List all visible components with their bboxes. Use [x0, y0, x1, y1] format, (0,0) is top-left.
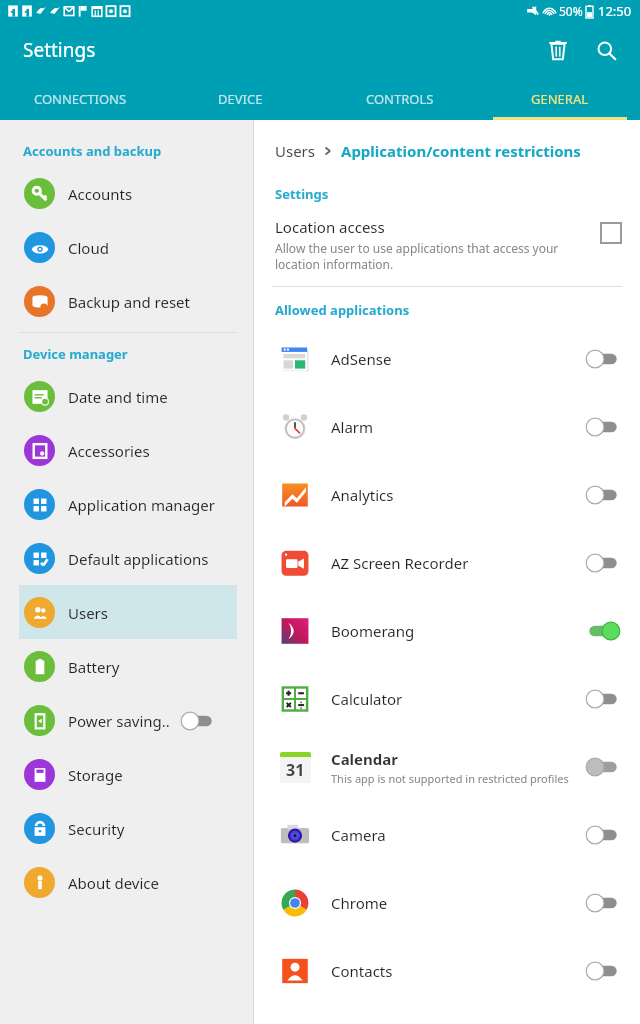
staticText: Security	[68, 819, 125, 839]
staticText: 12:50	[598, 2, 632, 20]
button[interactable]: AdSense	[278, 325, 621, 393]
button[interactable]: Security	[19, 801, 237, 855]
staticText: Calculator	[331, 689, 403, 709]
button[interactable]: Toggle off	[585, 823, 621, 847]
button[interactable]: Application manager	[19, 477, 237, 531]
staticText: CONTROLS	[366, 90, 434, 108]
staticText: This app is not supported in restricted …	[331, 771, 569, 786]
staticText: Default applications	[68, 549, 209, 569]
staticText: Contacts	[331, 961, 393, 981]
staticText: About device	[68, 873, 160, 893]
button[interactable]: Users	[275, 141, 315, 161]
staticText: Settings	[275, 185, 329, 203]
button[interactable]: Toggle off	[585, 347, 621, 371]
button[interactable]: Location access	[275, 217, 621, 272]
staticText: Accounts and backup	[23, 142, 162, 160]
staticText: Alarm	[331, 417, 374, 437]
staticText: Accessories	[68, 441, 150, 461]
button[interactable]: Contacts	[278, 937, 621, 1005]
staticText: DEVICE	[218, 90, 263, 108]
button[interactable]: Power saving..	[19, 693, 237, 747]
staticText: Power saving..	[68, 711, 170, 731]
button[interactable]: AZ Screen Recorder	[278, 529, 621, 597]
staticText: Storage	[68, 765, 123, 785]
button[interactable]: Toggle off	[585, 755, 621, 779]
staticText: Backup and reset	[68, 292, 190, 312]
staticText: 50%	[559, 3, 583, 19]
staticText: GENERAL	[531, 90, 589, 108]
button[interactable]: Toggle off	[585, 687, 621, 711]
button[interactable]: Backup and reset	[19, 274, 237, 328]
button[interactable]: Boomerang	[278, 597, 621, 665]
button[interactable]: Toggle off	[585, 551, 621, 575]
button[interactable]: Toggle off	[585, 483, 621, 507]
button[interactable]: Toggle off	[585, 959, 621, 983]
button[interactable]: Default applications	[19, 531, 237, 585]
staticText: Users	[68, 603, 108, 623]
button[interactable]: Delete	[534, 26, 582, 74]
button[interactable]: Analytics	[278, 461, 621, 529]
staticText: 31	[286, 759, 305, 781]
button[interactable]: Application/content restrictions	[341, 141, 581, 161]
staticText: Boomerang	[331, 621, 415, 641]
staticText: Analytics	[331, 485, 394, 505]
button[interactable]: Toggle off	[585, 891, 621, 915]
button[interactable]: Cloud	[19, 220, 237, 274]
button[interactable]: DEVICE	[160, 78, 320, 120]
staticText: Allowed applications	[275, 301, 410, 319]
button[interactable]: CONTROLS	[320, 78, 480, 120]
staticText: Date and time	[68, 387, 168, 407]
staticText: CONNECTIONS	[34, 90, 127, 108]
staticText: Settings	[23, 37, 96, 63]
button[interactable]: Alarm	[278, 393, 621, 461]
button[interactable]: Chrome	[278, 869, 621, 937]
staticText: Accounts	[68, 184, 133, 204]
staticText: Application manager	[68, 495, 215, 515]
staticText: AZ Screen Recorder	[331, 553, 469, 573]
staticText: Chrome	[331, 893, 388, 913]
button[interactable]: Battery	[19, 639, 237, 693]
button[interactable]: CONNECTIONS	[0, 78, 160, 120]
button[interactable]: Accounts	[19, 166, 237, 220]
button[interactable]: About device	[19, 855, 237, 909]
button[interactable]: Camera	[278, 801, 621, 869]
button[interactable]: 31	[278, 733, 621, 801]
button[interactable]: Users	[19, 585, 237, 639]
staticText: Camera	[331, 825, 386, 845]
button[interactable]: Accessories	[19, 423, 237, 477]
button[interactable]: Toggle off	[585, 415, 621, 439]
button[interactable]: Storage	[19, 747, 237, 801]
button[interactable]: GENERAL	[480, 78, 640, 120]
button[interactable]: Calculator	[278, 665, 621, 733]
staticText: AdSense	[331, 349, 392, 369]
button[interactable]: Toggle on	[585, 619, 621, 643]
staticText: Battery	[68, 657, 120, 677]
staticText: Calendar	[331, 749, 398, 769]
staticText: Allow the user to use applications that …	[275, 240, 589, 272]
button[interactable]: Search	[582, 26, 630, 74]
button[interactable]: Date and time	[19, 369, 237, 423]
staticText: Device manager	[23, 345, 128, 363]
staticText: Location access	[275, 217, 385, 237]
staticText: Cloud	[68, 238, 109, 258]
button[interactable]: Toggle off	[180, 709, 216, 733]
